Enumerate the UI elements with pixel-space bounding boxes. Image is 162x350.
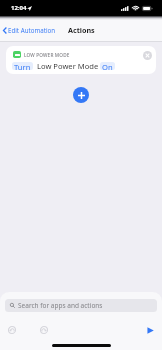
button[interactable]: Search for apps and actions bbox=[5, 299, 157, 312]
button[interactable]: LOW POWER MODE bbox=[6, 46, 156, 74]
staticText: On bbox=[102, 62, 113, 70]
staticText: LOW POWER MODE bbox=[24, 52, 70, 58]
button[interactable]: On bbox=[100, 62, 115, 70]
staticText: 12:04 bbox=[11, 4, 27, 12]
staticText: Turn bbox=[14, 62, 31, 70]
staticText: Actions bbox=[68, 25, 95, 35]
staticText: Search for apps and actions bbox=[18, 301, 103, 310]
button[interactable]: Edit Automation bbox=[0, 23, 60, 37]
button[interactable]: Run bbox=[142, 322, 158, 338]
button[interactable]: Undo bbox=[4, 322, 20, 338]
staticText: Edit Automation bbox=[8, 26, 56, 34]
button[interactable]: Turn bbox=[12, 62, 33, 70]
button[interactable]: Redo bbox=[36, 322, 52, 338]
staticText: Low Power Mode bbox=[37, 61, 99, 71]
button[interactable]: Remove action bbox=[143, 51, 152, 60]
button[interactable]: Add action bbox=[73, 87, 89, 103]
